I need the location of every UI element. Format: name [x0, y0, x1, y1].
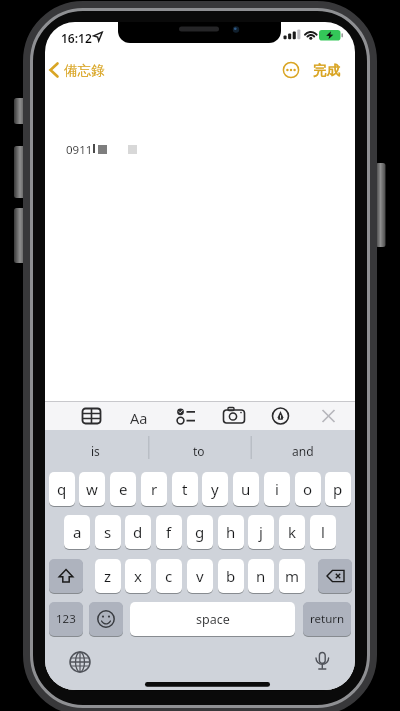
- button[interactable]: o: [295, 472, 321, 506]
- button[interactable]: l: [310, 515, 336, 549]
- staticText: g: [195, 522, 205, 542]
- button[interactable]: [270, 404, 294, 428]
- staticText: l: [321, 522, 325, 542]
- staticText: q: [57, 479, 67, 499]
- button[interactable]: [47, 58, 127, 82]
- button[interactable]: w: [79, 472, 105, 506]
- button[interactable]: k: [279, 515, 305, 549]
- staticText: x: [134, 566, 142, 586]
- button[interactable]: x: [125, 559, 151, 593]
- button[interactable]: [150, 432, 251, 463]
- staticText: z: [104, 566, 112, 586]
- button[interactable]: b: [218, 559, 244, 593]
- button[interactable]: [67, 649, 93, 675]
- staticText: to: [193, 443, 205, 459]
- button[interactable]: [175, 404, 199, 428]
- button[interactable]: j: [248, 515, 274, 549]
- button[interactable]: [45, 432, 148, 463]
- button[interactable]: g: [187, 515, 213, 549]
- staticText: v: [196, 566, 204, 586]
- button[interactable]: [309, 649, 335, 675]
- button[interactable]: e: [110, 472, 136, 506]
- staticText: return: [310, 611, 345, 627]
- staticText: space: [196, 611, 230, 628]
- button[interactable]: s: [95, 515, 121, 549]
- staticText: and: [292, 443, 314, 459]
- staticText: s: [104, 522, 112, 542]
- staticText: is: [91, 443, 100, 459]
- button[interactable]: i: [264, 472, 290, 506]
- staticText: d: [133, 522, 143, 542]
- staticText: e: [119, 479, 128, 499]
- button[interactable]: 123: [49, 602, 83, 636]
- button[interactable]: n: [248, 559, 274, 593]
- button[interactable]: u: [233, 472, 259, 506]
- button[interactable]: q: [49, 472, 75, 506]
- button[interactable]: m: [279, 559, 305, 593]
- staticText: 0911: [66, 142, 93, 158]
- staticText: p: [333, 479, 343, 499]
- button[interactable]: t: [172, 472, 198, 506]
- staticText: h: [226, 522, 236, 542]
- button[interactable]: [252, 432, 355, 463]
- staticText: y: [211, 479, 219, 499]
- button[interactable]: a: [64, 515, 90, 549]
- button[interactable]: y: [202, 472, 228, 506]
- staticText: t: [182, 479, 188, 499]
- button[interactable]: z: [95, 559, 121, 593]
- button[interactable]: c: [156, 559, 182, 593]
- button[interactable]: 完成: [313, 62, 340, 79]
- staticText: j: [259, 522, 263, 542]
- staticText: u: [241, 479, 251, 499]
- staticText: r: [151, 479, 158, 499]
- button[interactable]: r: [141, 472, 167, 506]
- button[interactable]: [318, 559, 352, 593]
- button[interactable]: [222, 404, 246, 428]
- staticText: 備忘錄: [64, 62, 105, 79]
- button[interactable]: return: [303, 602, 351, 636]
- staticText: w: [86, 479, 98, 499]
- staticText: b: [226, 566, 236, 586]
- button[interactable]: [80, 404, 104, 428]
- button[interactable]: [49, 559, 83, 593]
- staticText: 123: [56, 611, 76, 627]
- button[interactable]: v: [187, 559, 213, 593]
- staticText: n: [256, 566, 266, 586]
- staticText: 16:12: [61, 30, 92, 46]
- button[interactable]: d: [125, 515, 151, 549]
- staticText: c: [165, 566, 173, 586]
- staticText: Aa: [130, 408, 148, 428]
- button[interactable]: p: [325, 472, 351, 506]
- staticText: m: [285, 566, 300, 586]
- staticText: a: [73, 522, 82, 542]
- staticText: i: [275, 479, 279, 499]
- button[interactable]: [317, 404, 341, 428]
- staticText: f: [166, 522, 172, 542]
- button[interactable]: space: [130, 602, 295, 636]
- button[interactable]: h: [218, 515, 244, 549]
- button[interactable]: [127, 404, 151, 428]
- button[interactable]: [283, 62, 299, 78]
- staticText: k: [288, 522, 297, 542]
- button[interactable]: f: [156, 515, 182, 549]
- button[interactable]: [89, 602, 123, 636]
- staticText: o: [303, 479, 313, 499]
